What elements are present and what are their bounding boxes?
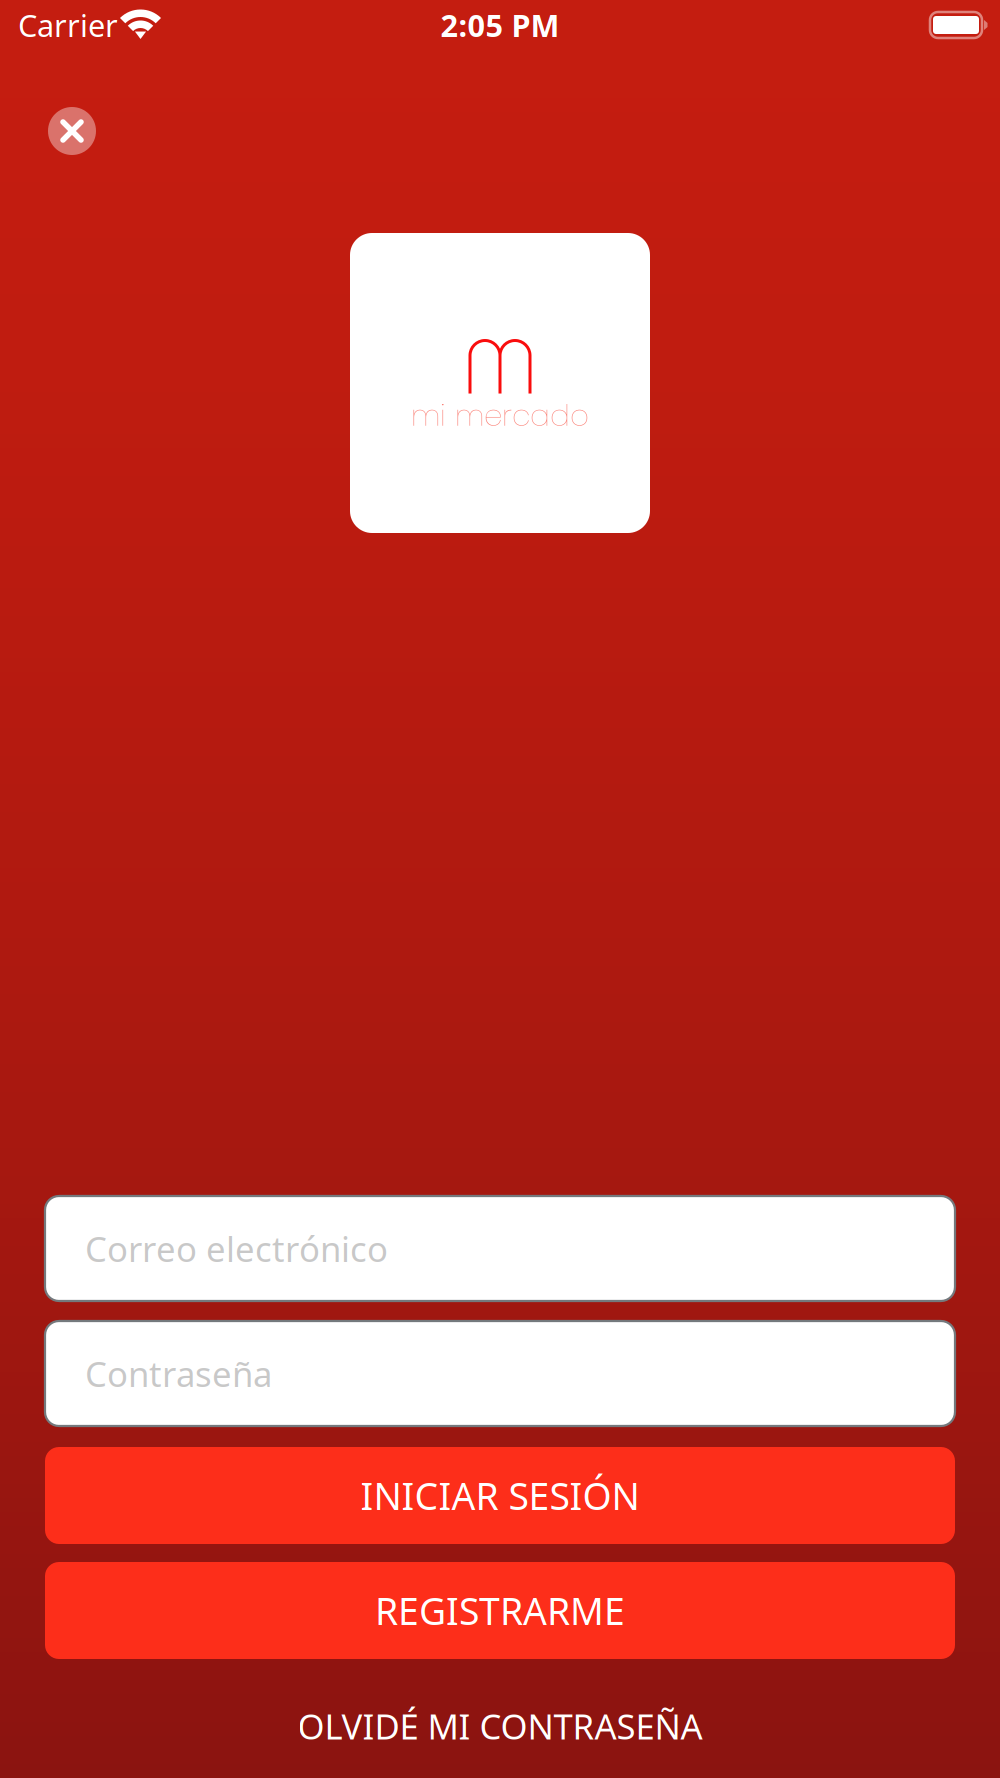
staticText: OLVIDÉ MI CONTRASEÑA bbox=[297, 1702, 702, 1750]
staticText: Correo electrónico bbox=[85, 1225, 388, 1272]
button[interactable]: INICIAR SESIÓN bbox=[45, 1447, 955, 1544]
staticText: INICIAR SESIÓN bbox=[360, 1470, 639, 1521]
staticText: 2:05 PM bbox=[440, 4, 559, 46]
button[interactable]: Contraseña bbox=[45, 1321, 955, 1426]
staticText: Carrier bbox=[18, 4, 118, 46]
staticText: Contraseña bbox=[85, 1350, 272, 1397]
staticText: REGISTRARME bbox=[375, 1585, 625, 1636]
button[interactable]: Correo electrónico bbox=[45, 1196, 955, 1301]
staticText: mi mercado bbox=[411, 395, 589, 436]
button[interactable]: OLVIDÉ MI CONTRASEÑA bbox=[45, 1696, 955, 1756]
button[interactable]: Close bbox=[48, 107, 96, 155]
button[interactable]: REGISTRARME bbox=[45, 1562, 955, 1659]
